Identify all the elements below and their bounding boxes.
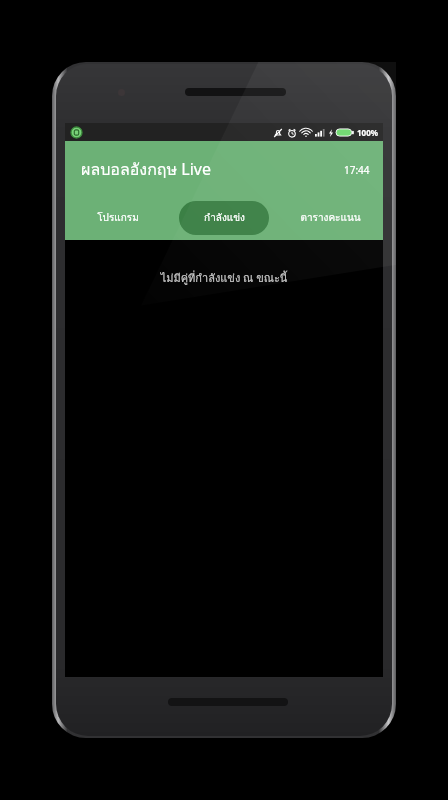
staticText: 17:44	[344, 163, 370, 177]
button[interactable]: กำลังแข่ง	[179, 201, 269, 235]
button[interactable]: ตารางคะแนน	[285, 201, 375, 235]
staticText: ตารางคะแนน	[300, 210, 361, 226]
staticText: กำลังแข่ง	[204, 210, 245, 226]
staticText: ไม่มีคู่ที่กำลังแข่ง ณ ขณะนี้	[65, 269, 383, 286]
staticText: 100%	[357, 127, 378, 138]
staticText: ผลบอลอังกฤษ Live	[81, 157, 211, 182]
button[interactable]: โปรแกรม	[73, 201, 163, 235]
staticText: โปรแกรม	[97, 210, 139, 226]
other: App notification	[71, 127, 82, 138]
